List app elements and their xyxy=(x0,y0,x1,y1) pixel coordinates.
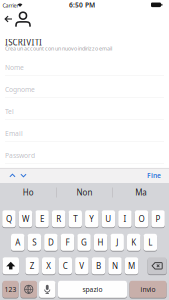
staticText: Fine xyxy=(147,171,161,180)
button[interactable]: E xyxy=(35,210,49,228)
staticText: spazio xyxy=(82,285,102,294)
button[interactable]: 123 xyxy=(2,280,18,298)
staticText: Ho xyxy=(23,187,34,198)
button[interactable]: Previous field xyxy=(8,171,17,180)
staticText: S xyxy=(32,237,36,248)
staticText: E xyxy=(40,213,44,224)
staticText: X xyxy=(46,260,51,271)
staticText: V xyxy=(79,260,84,271)
button[interactable]: F xyxy=(61,233,74,251)
staticText: C xyxy=(63,260,68,271)
staticText: I xyxy=(123,213,126,224)
button[interactable]: V xyxy=(75,257,89,275)
staticText: 123 xyxy=(4,285,16,294)
button[interactable]: S xyxy=(28,233,41,251)
staticText: 6:50 PM xyxy=(69,0,95,9)
button[interactable]: Dictate xyxy=(39,280,55,298)
button[interactable]: A xyxy=(11,233,24,251)
staticText: Cognome xyxy=(5,85,35,94)
button[interactable]: N xyxy=(108,257,122,275)
staticText: D xyxy=(48,237,54,248)
staticText: K xyxy=(131,237,136,248)
button[interactable]: Delete xyxy=(148,257,167,275)
button[interactable]: invio xyxy=(129,280,166,298)
button[interactable]: Profile xyxy=(14,10,32,28)
button[interactable]: P xyxy=(151,210,165,228)
button[interactable]: Y xyxy=(85,210,98,228)
staticText: J xyxy=(116,237,118,248)
button[interactable]: O xyxy=(135,210,148,228)
staticText: Nome xyxy=(5,63,24,72)
staticText: Ma xyxy=(135,187,146,198)
button[interactable]: Tel xyxy=(5,105,164,118)
staticText: N xyxy=(112,260,118,271)
button[interactable]: Q xyxy=(2,210,16,228)
staticText: Carrier xyxy=(2,2,18,9)
button[interactable]: C xyxy=(58,257,72,275)
button[interactable]: W xyxy=(19,210,32,228)
button[interactable]: T xyxy=(68,210,82,228)
staticText: O xyxy=(138,213,144,224)
staticText: Z xyxy=(30,260,35,271)
staticText: Q xyxy=(6,213,12,224)
staticText: M xyxy=(128,260,135,271)
staticText: B xyxy=(96,260,101,271)
staticText: U xyxy=(105,213,111,224)
staticText: invio xyxy=(140,285,155,294)
button[interactable]: G xyxy=(77,233,91,251)
staticText: Y xyxy=(89,213,94,224)
staticText: ISCRIVITI xyxy=(5,37,42,48)
staticText: P xyxy=(156,213,161,224)
button[interactable]: Password xyxy=(5,149,164,162)
button[interactable]: Nome xyxy=(5,61,164,74)
button[interactable]: Shift xyxy=(2,257,19,275)
button[interactable]: B xyxy=(92,257,105,275)
button[interactable]: R xyxy=(52,210,65,228)
staticText: Password xyxy=(5,151,35,160)
staticText: G xyxy=(81,237,87,248)
staticText: Tel xyxy=(5,107,14,116)
button[interactable]: Fine xyxy=(145,169,163,181)
button[interactable]: Ma xyxy=(113,184,169,200)
staticText: R xyxy=(56,213,61,224)
button[interactable]: L xyxy=(144,233,157,251)
staticText: T xyxy=(73,213,77,224)
button[interactable]: Non xyxy=(56,184,112,200)
button[interactable]: spazio xyxy=(58,280,127,298)
button[interactable]: Ho xyxy=(0,184,56,200)
button[interactable]: H xyxy=(94,233,107,251)
button[interactable]: Back xyxy=(2,13,14,25)
button[interactable]: Next field xyxy=(19,171,28,180)
staticText: L xyxy=(148,237,152,248)
button[interactable]: Z xyxy=(25,257,39,275)
staticText: F xyxy=(65,237,69,248)
staticText: A xyxy=(15,237,20,248)
button[interactable]: X xyxy=(42,257,55,275)
staticText: Non xyxy=(76,187,92,198)
button[interactable]: K xyxy=(127,233,140,251)
staticText: Crea un account con un nuovo indirizzo e… xyxy=(5,45,112,52)
button[interactable]: I xyxy=(118,210,132,228)
button[interactable]: D xyxy=(44,233,58,251)
button[interactable]: Email xyxy=(5,127,164,140)
button[interactable]: Cognome xyxy=(5,83,164,96)
button[interactable]: U xyxy=(102,210,115,228)
button[interactable]: M xyxy=(125,257,138,275)
button[interactable]: J xyxy=(110,233,124,251)
staticText: W xyxy=(22,213,29,224)
staticText: Email xyxy=(5,129,23,138)
button[interactable]: Next keyboard xyxy=(20,280,37,298)
staticText: H xyxy=(98,237,104,248)
